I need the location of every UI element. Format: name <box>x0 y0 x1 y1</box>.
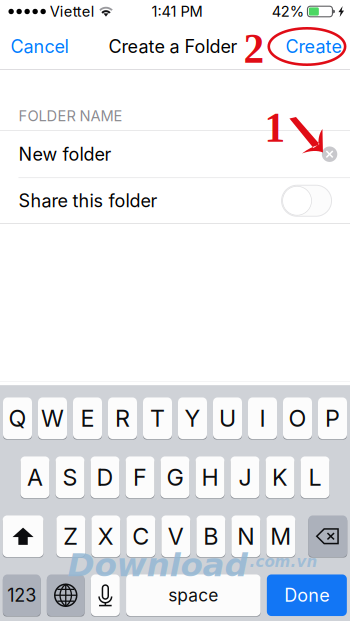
staticText: Create <box>286 36 342 57</box>
button[interactable]: New folder <box>0 131 350 178</box>
staticText: space <box>168 585 218 606</box>
button[interactable]: K <box>265 456 294 499</box>
staticText: Done <box>284 584 329 606</box>
staticText: .com.vn <box>249 553 317 570</box>
button[interactable]: U <box>213 397 242 440</box>
staticText: F <box>133 463 147 491</box>
button[interactable]: F <box>125 456 154 499</box>
staticText: T <box>150 404 165 432</box>
button[interactable]: C <box>126 515 155 558</box>
staticText: I <box>259 404 265 432</box>
staticText: 123 <box>7 584 36 606</box>
button[interactable]: R <box>108 397 137 440</box>
staticText: L <box>308 463 321 491</box>
staticText: 42% <box>272 3 304 20</box>
staticText: Share this folder <box>18 190 157 212</box>
button[interactable]: W <box>38 397 67 440</box>
button[interactable]: Done <box>267 574 347 617</box>
staticText: J <box>238 463 251 491</box>
staticText: 1 <box>264 105 285 151</box>
button[interactable]: L <box>300 456 329 499</box>
staticText: 1:41 PM <box>151 3 202 20</box>
staticText: D <box>96 463 113 491</box>
button[interactable]: V <box>161 515 190 558</box>
button[interactable]: J <box>230 456 259 499</box>
staticText: R <box>115 404 130 432</box>
button[interactable]: 123 <box>3 574 41 617</box>
button[interactable]: space <box>126 574 261 617</box>
button[interactable]: Delete <box>308 515 347 558</box>
button[interactable]: Dictation <box>91 574 120 617</box>
button[interactable]: M <box>266 515 295 558</box>
staticText: M <box>270 522 291 550</box>
staticText: Z <box>63 522 78 550</box>
staticText: FOLDER NAME <box>18 107 122 125</box>
staticText: Y <box>184 404 200 432</box>
button[interactable]: Share this folder <box>0 178 350 223</box>
button[interactable]: B <box>196 515 225 558</box>
staticText: U <box>219 404 236 432</box>
staticText: V <box>168 522 184 550</box>
staticText: O <box>288 404 306 432</box>
button[interactable]: D <box>90 456 119 499</box>
button[interactable]: A <box>20 456 49 499</box>
staticText: B <box>203 522 218 550</box>
staticText: Viettel <box>50 3 95 20</box>
button[interactable]: Shift <box>3 515 43 558</box>
button[interactable]: Create <box>276 23 350 70</box>
button[interactable]: Q <box>3 397 32 440</box>
button[interactable]: O <box>283 397 312 440</box>
staticText: C <box>132 522 149 550</box>
button[interactable]: S <box>55 456 84 499</box>
button[interactable]: Y <box>178 397 207 440</box>
staticText: Create a Folder <box>108 36 237 57</box>
staticText: Cancel <box>10 36 68 57</box>
staticText: P <box>325 404 340 432</box>
button[interactable]: G <box>160 456 189 499</box>
button[interactable]: I <box>248 397 277 440</box>
staticText: S <box>62 463 77 491</box>
button[interactable]: Z <box>56 515 85 558</box>
button[interactable]: Switch keyboard <box>47 574 85 617</box>
staticText: A <box>27 463 43 491</box>
staticText: Download <box>67 546 247 584</box>
staticText: G <box>166 463 183 491</box>
button[interactable]: P <box>318 397 347 440</box>
button[interactable]: H <box>195 456 224 499</box>
staticText: 2 <box>243 26 264 72</box>
button[interactable]: N <box>231 515 260 558</box>
button[interactable]: Clear text <box>316 140 344 168</box>
staticText: New folder <box>18 143 111 165</box>
button[interactable]: Share this folder <box>282 185 332 216</box>
staticText: X <box>98 522 114 550</box>
button[interactable]: Cancel <box>0 23 78 70</box>
staticText: W <box>41 404 64 432</box>
button[interactable]: T <box>143 397 172 440</box>
button[interactable]: X <box>91 515 120 558</box>
staticText: Q <box>8 404 26 432</box>
button[interactable]: E <box>73 397 102 440</box>
staticText: N <box>237 522 254 550</box>
staticText: K <box>272 463 288 491</box>
staticText: E <box>80 404 94 432</box>
staticText: H <box>201 463 218 491</box>
